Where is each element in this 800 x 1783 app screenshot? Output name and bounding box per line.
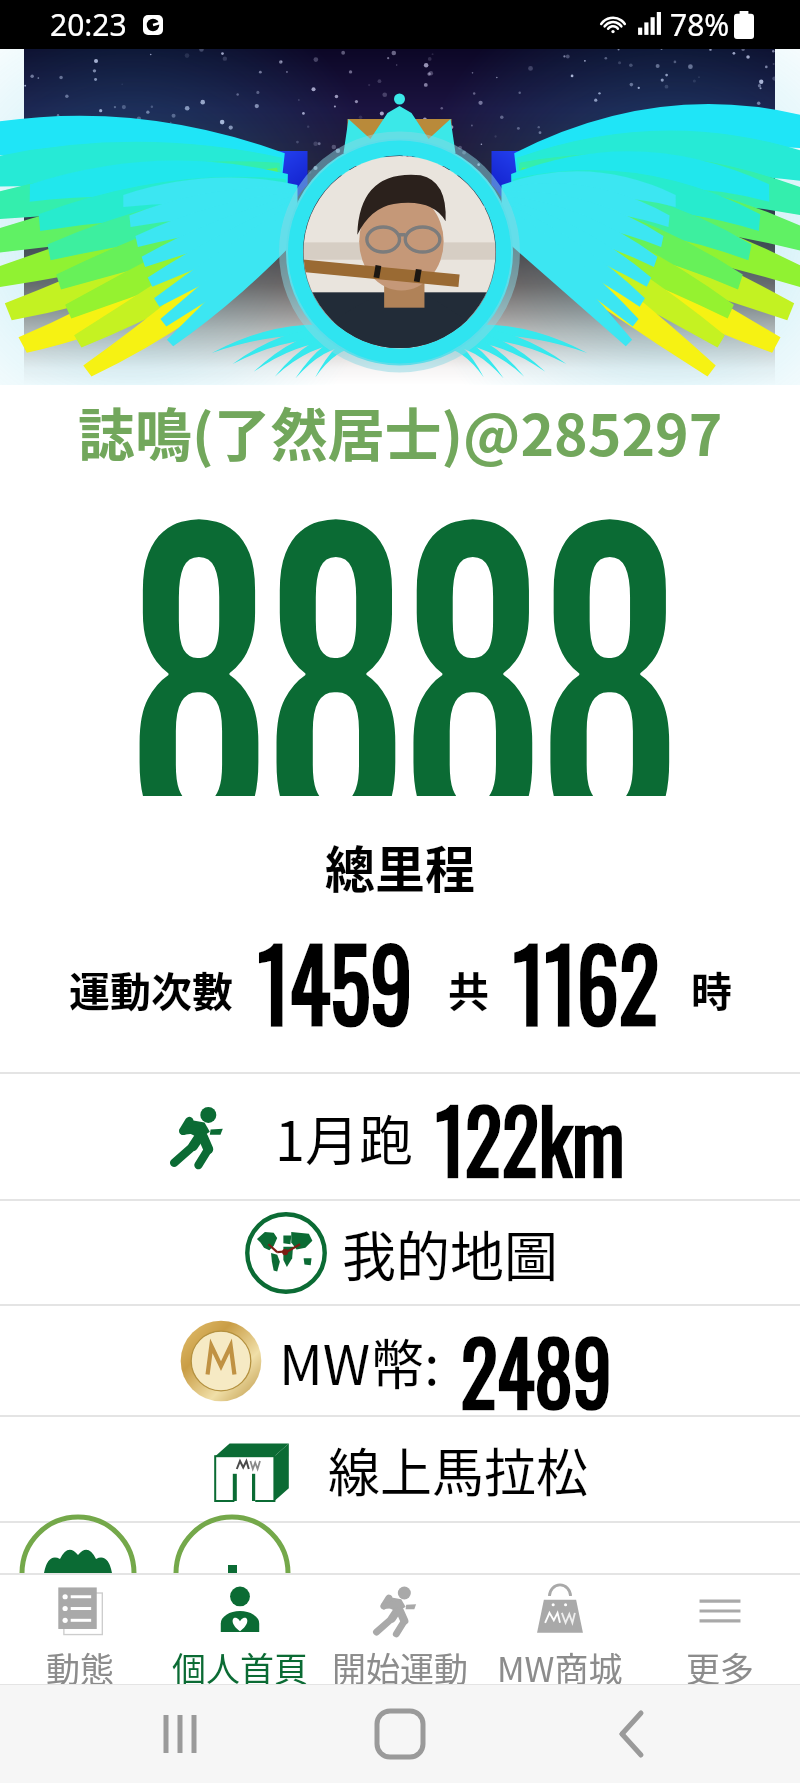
button[interactable]: 我的地圖 xyxy=(0,1201,800,1304)
staticText: 運動次數 xyxy=(69,959,233,1018)
button[interactable]: MW幣: xyxy=(0,1306,800,1415)
staticText: 總里程 xyxy=(325,830,475,902)
staticText: 共 xyxy=(448,959,489,1018)
staticText: 1月跑 xyxy=(275,1098,413,1176)
button[interactable]: MW商城 xyxy=(480,1575,640,1684)
staticText: 2489 xyxy=(460,1306,613,1415)
button[interactable]: 個人首頁 xyxy=(160,1575,320,1684)
button[interactable]: 動態 xyxy=(0,1575,160,1684)
staticText: MW幣: xyxy=(279,1322,440,1400)
staticText: 20:23 xyxy=(50,4,127,45)
button[interactable]: 更多 xyxy=(640,1575,800,1684)
button[interactable]: 線上馬拉松 xyxy=(0,1417,800,1521)
staticText: 我的地圖 xyxy=(342,1214,558,1292)
staticText: 線上馬拉松 xyxy=(328,1432,589,1507)
staticText: 8888 xyxy=(128,456,673,796)
staticText: 1459 xyxy=(258,908,413,1028)
staticText: 時 xyxy=(691,959,732,1018)
staticText: 122km xyxy=(435,1074,625,1199)
staticText: MW商城 xyxy=(497,1643,623,1684)
staticText: 動態 xyxy=(46,1643,114,1684)
staticText: 1162 xyxy=(513,908,659,1028)
staticText: 誌鳴(了然居士)@285297 xyxy=(78,390,723,470)
staticText: 78% xyxy=(670,4,730,45)
staticText: 更多 xyxy=(686,1643,754,1684)
staticText: 個人首頁 xyxy=(172,1643,308,1684)
button[interactable]: 開始運動 xyxy=(320,1575,480,1684)
staticText: 開始運動 xyxy=(332,1643,468,1684)
button[interactable]: 1月跑 xyxy=(0,1074,800,1199)
